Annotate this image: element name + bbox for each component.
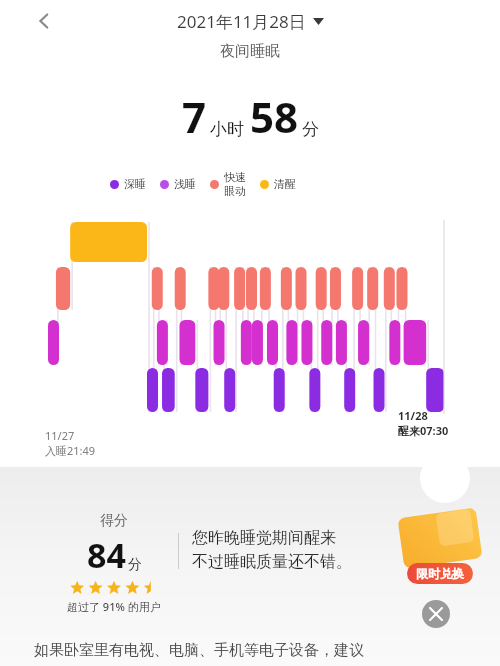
staticText: 得分 [100,512,128,530]
staticText: 超过了 91% 的用户 [67,599,161,614]
staticText: 58 [250,88,299,145]
staticText: 84 [87,532,126,578]
staticText: 眼动 [224,184,246,198]
staticText: 清醒 [274,177,296,191]
button[interactable]: 限时兑换 [392,508,488,590]
staticText: 11/28 [398,408,428,423]
button[interactable]: Back [28,5,60,37]
staticText: 入睡21:49 [45,443,96,458]
staticText: 浅睡 [174,177,196,191]
staticText: 分 [128,556,142,574]
staticText: 分 [302,119,319,140]
button[interactable]: 2021年11月28日 [177,10,324,33]
staticText: 醒来07:30 [398,423,449,438]
staticText: 限时兑换 [416,566,464,581]
staticText: 夜间睡眠 [220,42,280,61]
staticText: 11/27 [45,428,75,443]
staticText: 深睡 [124,177,146,191]
staticText: 如果卧室里有电视、电脑、手机等电子设备，建议 [34,641,364,660]
staticText: 2021年11月28日 [177,10,306,33]
staticText: 您昨晚睡觉期间醒来 [192,528,336,548]
staticText: 小时 [210,119,244,140]
staticText: 7 [182,88,207,145]
staticText: 快速 [224,170,246,184]
button[interactable]: Close [422,600,450,628]
staticText: 不过睡眠质量还不错。 [192,552,352,572]
